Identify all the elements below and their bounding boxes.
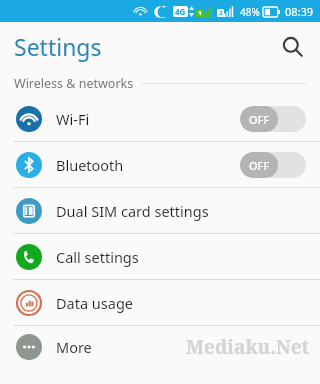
staticText: Settings xyxy=(14,31,102,62)
staticText: Mediaku.Net xyxy=(186,334,310,360)
staticText: 4G xyxy=(175,6,186,17)
staticText: OFF xyxy=(249,112,270,127)
staticText: More xyxy=(56,337,92,357)
staticText: OFF xyxy=(249,158,270,173)
staticText: Bluetooth xyxy=(56,155,124,175)
button[interactable]: Search xyxy=(272,26,312,66)
staticText: 48% xyxy=(240,5,260,19)
button[interactable]: Call settings xyxy=(0,234,320,279)
button[interactable]: OFF xyxy=(240,152,306,178)
staticText: 1 xyxy=(198,9,202,17)
staticText: Wi-Fi xyxy=(56,109,90,129)
staticText: Data usage xyxy=(56,293,133,313)
staticText: Dual SIM card settings xyxy=(56,201,209,221)
button[interactable]: Data usage xyxy=(0,280,320,325)
staticText: Call settings xyxy=(56,247,139,267)
button[interactable]: Wi-Fi xyxy=(0,96,320,141)
staticText: 08:39 xyxy=(285,4,314,19)
staticText: 2 xyxy=(219,9,223,17)
staticText: Wireless & networks xyxy=(14,75,134,92)
button[interactable]: Bluetooth xyxy=(0,142,320,187)
button[interactable]: Dual SIM card settings xyxy=(0,188,320,233)
button[interactable]: OFF xyxy=(240,106,306,132)
